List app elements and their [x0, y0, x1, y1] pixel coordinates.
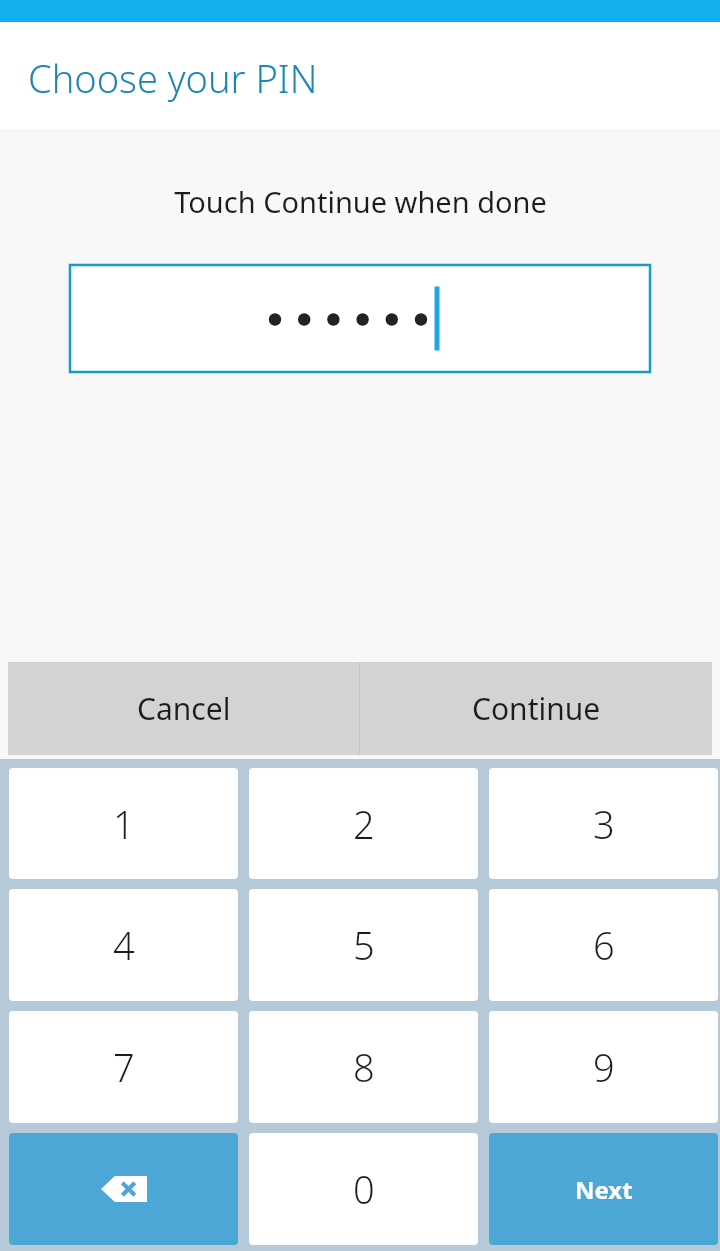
button[interactable]: 3	[489, 768, 718, 879]
staticText: Next	[575, 1173, 633, 1206]
button[interactable]: Cancel	[8, 662, 359, 755]
staticText: 5	[353, 919, 375, 971]
button[interactable]: 0	[249, 1133, 478, 1245]
button[interactable]: 4	[9, 889, 238, 1001]
staticText: 9	[593, 1041, 615, 1093]
button[interactable]: 8	[249, 1011, 478, 1123]
staticText: 0	[353, 1163, 375, 1215]
button[interactable]: 1	[9, 768, 238, 879]
staticText: 7	[113, 1041, 135, 1093]
staticText: Cancel	[137, 688, 231, 729]
staticText: 3	[593, 798, 615, 850]
staticText: 8	[353, 1041, 375, 1093]
button[interactable]: 9	[489, 1011, 718, 1123]
button[interactable]	[70, 265, 650, 372]
staticText: Choose your PIN	[28, 52, 318, 104]
button[interactable]: Next	[489, 1133, 718, 1245]
button[interactable]: 6	[489, 889, 718, 1001]
staticText: Continue	[472, 688, 601, 729]
button[interactable]: Continue	[360, 662, 712, 755]
button[interactable]: Backspace	[9, 1133, 238, 1245]
staticText: 4	[113, 919, 135, 971]
staticText: 1	[113, 798, 135, 850]
button[interactable]: 5	[249, 889, 478, 1001]
button[interactable]: 7	[9, 1011, 238, 1123]
staticText: Touch Continue when done	[174, 182, 547, 221]
button[interactable]: 2	[249, 768, 478, 879]
staticText: 2	[353, 798, 375, 850]
staticText: 6	[593, 919, 615, 971]
